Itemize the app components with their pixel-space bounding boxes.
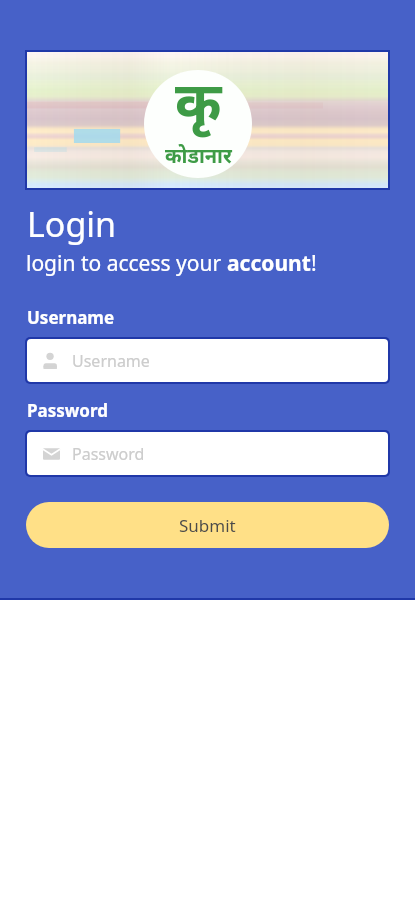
staticText: account — [227, 249, 311, 278]
staticText: कोडानार — [165, 142, 232, 169]
staticText: login to access your — [26, 249, 227, 278]
other: Username — [43, 352, 58, 370]
staticText: Username — [27, 306, 115, 329]
button[interactable]: Submit — [26, 502, 389, 548]
staticText: Username — [72, 350, 150, 372]
staticText: Submit — [179, 514, 236, 537]
button[interactable]: Password — [27, 432, 388, 475]
staticText: ! — [311, 249, 317, 278]
other: Password — [43, 445, 60, 463]
button[interactable]: Username — [27, 339, 388, 382]
staticText: Password — [72, 443, 145, 465]
staticText: Password — [27, 399, 108, 422]
staticText: Login — [27, 201, 117, 247]
staticText: कृ — [175, 70, 222, 138]
